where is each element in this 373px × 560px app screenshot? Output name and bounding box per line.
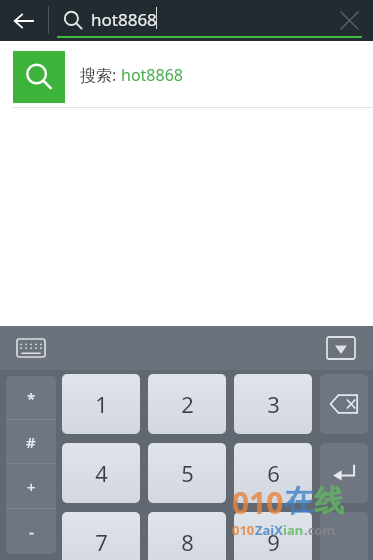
staticText: 6 [267, 458, 280, 488]
staticText: 1 [95, 389, 108, 419]
button[interactable]: Clear [330, 0, 368, 41]
button[interactable]: More [320, 512, 368, 560]
button[interactable]: 4 [62, 443, 140, 503]
button[interactable]: 2 [148, 374, 226, 434]
staticText: ian [283, 521, 304, 539]
staticText: 7 [95, 527, 108, 557]
button[interactable]: 搜索: [0, 41, 373, 108]
staticText: 010 [232, 482, 284, 523]
button[interactable]: Enter [320, 443, 368, 503]
button[interactable]: Backspace [320, 374, 368, 434]
button[interactable]: # [6, 420, 56, 464]
button[interactable]: 3 [234, 374, 312, 434]
staticText: 4 [95, 458, 108, 488]
staticText: # [26, 432, 36, 452]
staticText: 搜索: [80, 64, 121, 86]
staticText: 5 [181, 458, 194, 488]
button[interactable]: 6 [234, 443, 312, 503]
button[interactable]: * [6, 376, 56, 420]
button[interactable]: 1 [62, 374, 140, 434]
button[interactable]: + [6, 464, 56, 509]
staticText: 9 [267, 527, 280, 557]
staticText: 线 [314, 482, 344, 520]
button[interactable]: Back [0, 0, 48, 41]
staticText: 2 [181, 389, 194, 419]
staticText: * [27, 388, 36, 408]
staticText: hot8868 [121, 64, 183, 86]
staticText: ZaiX [255, 521, 283, 539]
staticText: 010 [232, 521, 255, 539]
staticText: - [29, 522, 34, 542]
button[interactable]: 8 [148, 512, 226, 560]
button[interactable]: - [6, 509, 56, 554]
button[interactable]: Hide keyboard [317, 326, 365, 370]
button[interactable]: 9 [234, 512, 312, 560]
staticText: + [27, 477, 36, 497]
staticText: 8 [181, 527, 194, 557]
staticText: hot8868 [91, 8, 157, 31]
button[interactable]: Keyboard settings [6, 326, 56, 370]
staticText: 3 [267, 389, 280, 419]
staticText: .com [304, 521, 336, 539]
staticText: 在 [284, 482, 314, 520]
button[interactable]: 5 [148, 443, 226, 503]
button[interactable]: 7 [62, 512, 140, 560]
